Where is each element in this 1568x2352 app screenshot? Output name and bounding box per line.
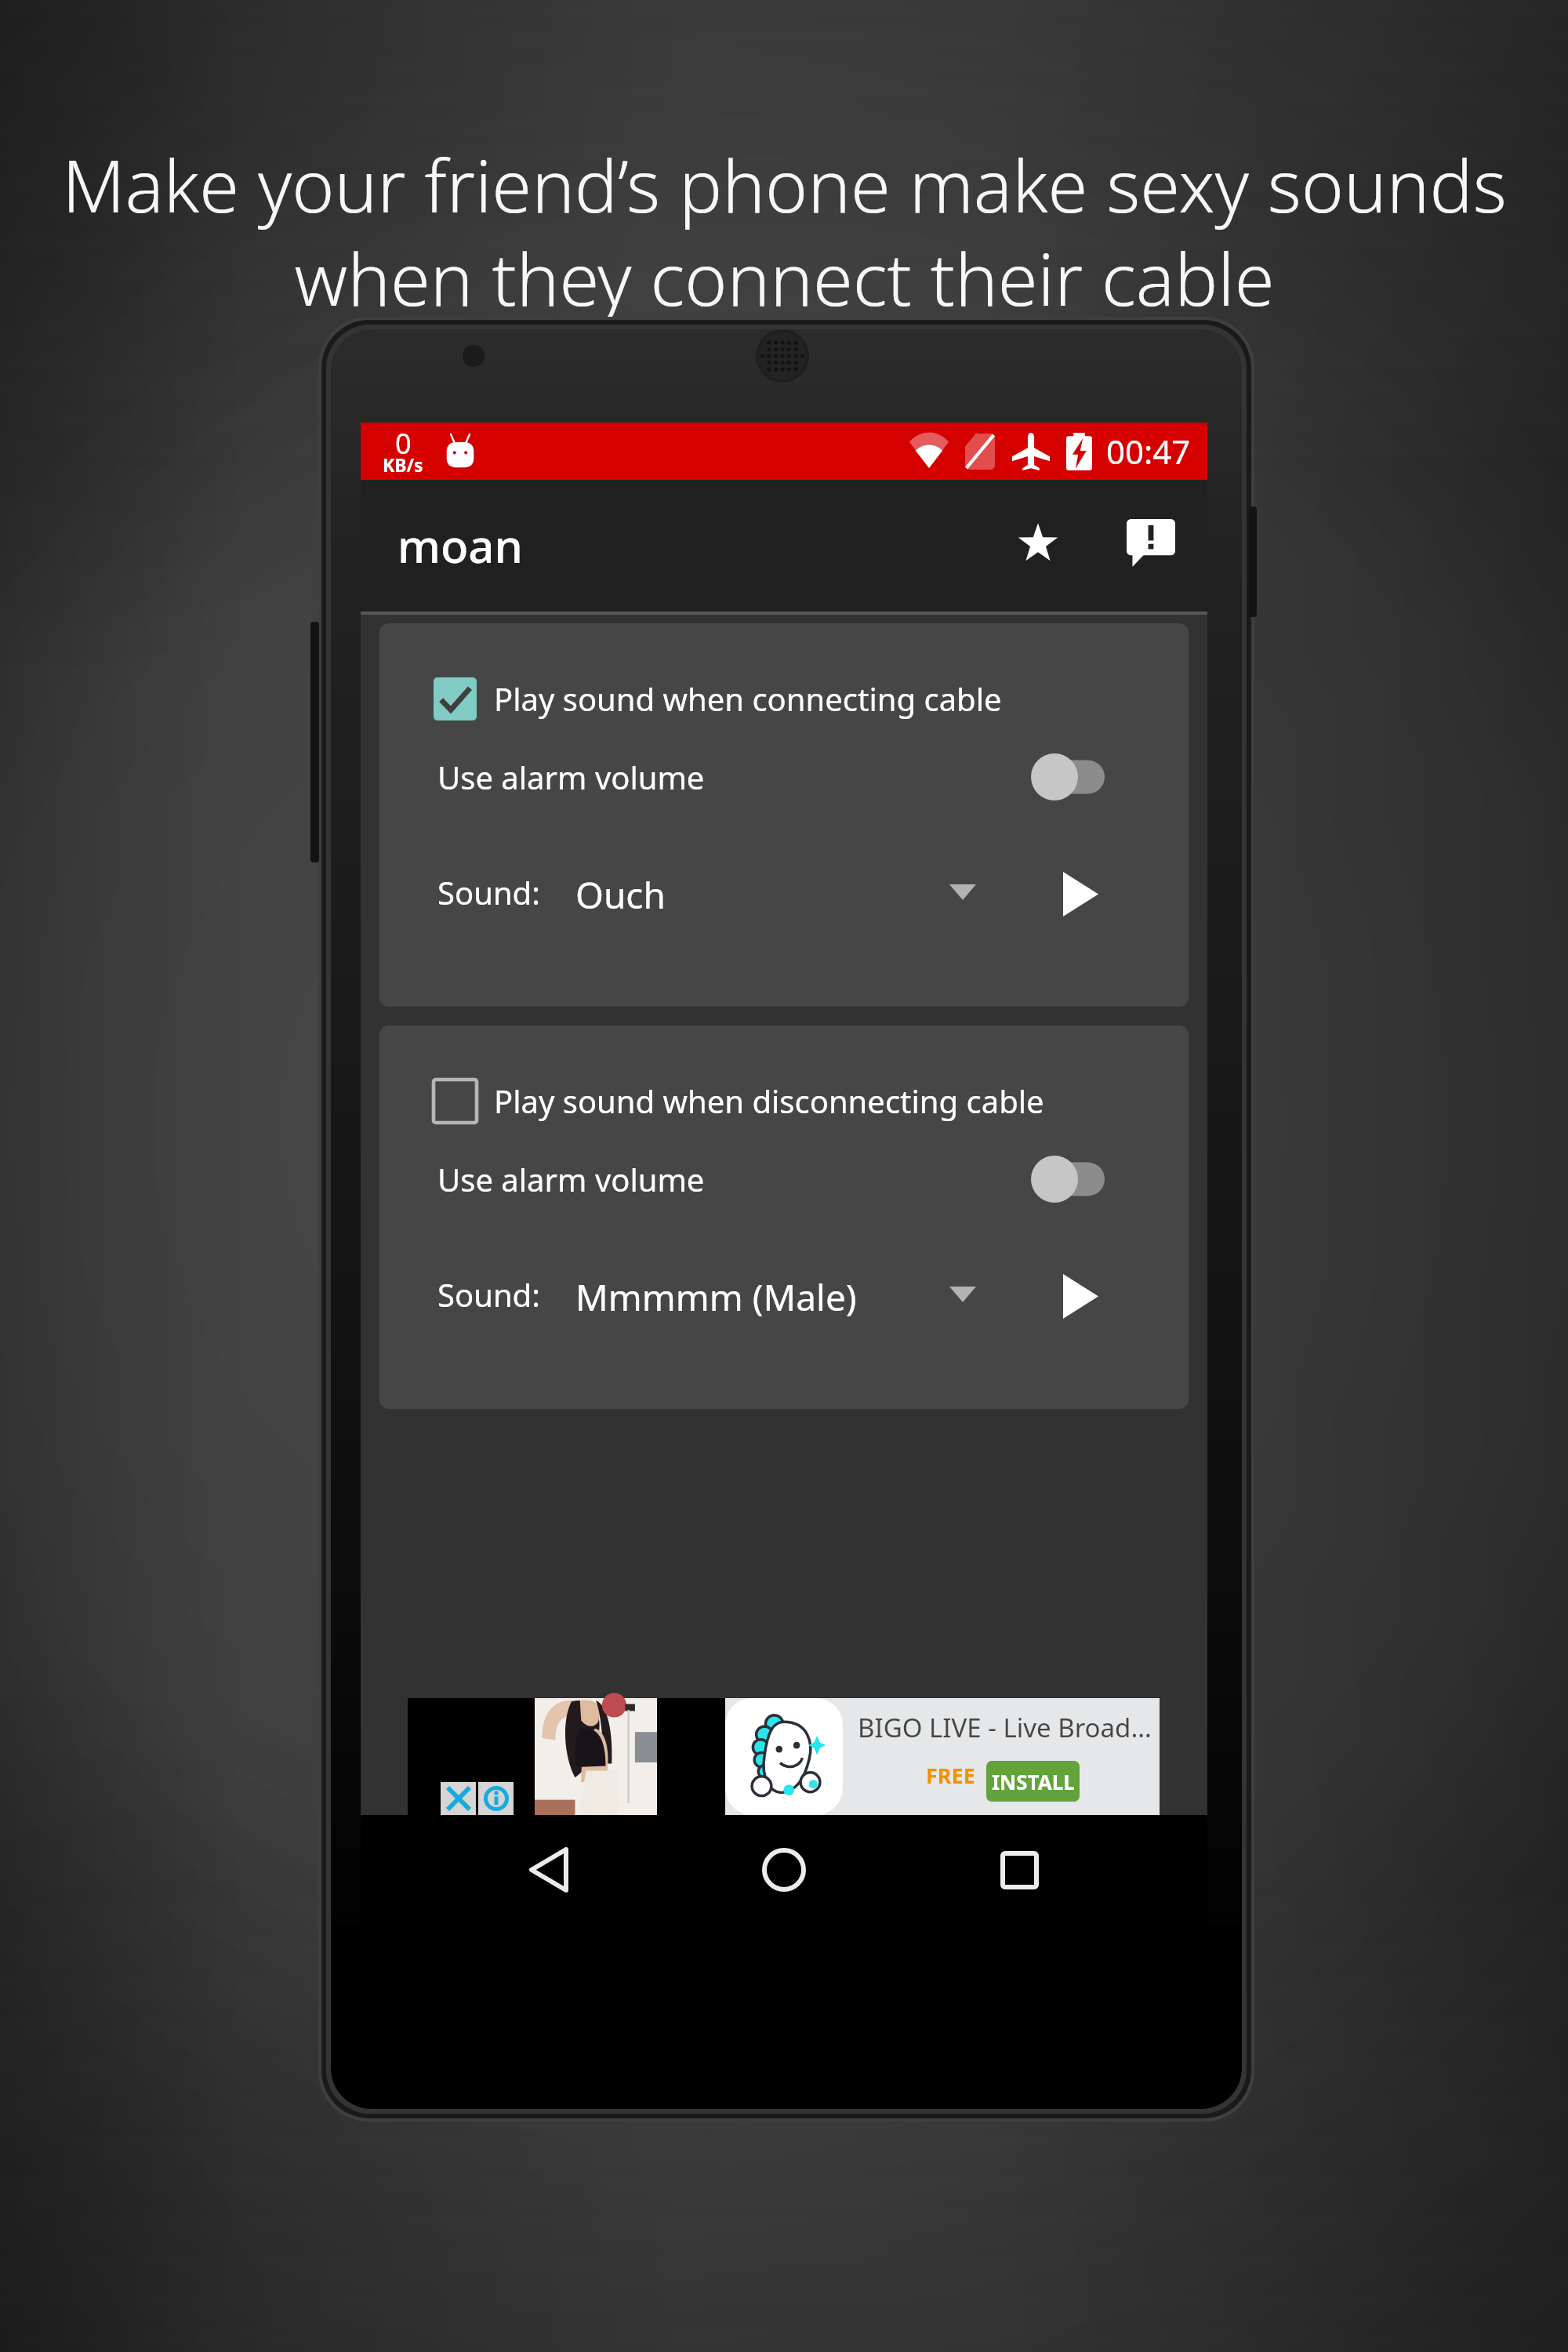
staticText: Use alarm volume bbox=[437, 1158, 705, 1200]
staticText: 00:47 bbox=[1106, 429, 1191, 474]
staticText: Use alarm volume bbox=[437, 756, 705, 798]
staticText: Make your friend’s phone make sexy sound… bbox=[62, 136, 1507, 327]
button[interactable]: Use alarm volume bbox=[379, 1149, 1189, 1210]
staticText: Play sound when disconnecting cable bbox=[494, 1080, 1044, 1122]
staticText: Ouch bbox=[575, 870, 666, 920]
button[interactable]: INSTALL bbox=[986, 1761, 1080, 1802]
button[interactable]: Home bbox=[725, 1815, 843, 1925]
button[interactable]: BIGO LIVE - Live Broad... bbox=[725, 1698, 1160, 1815]
staticText: moan bbox=[397, 514, 523, 576]
button[interactable]: Ad information bbox=[478, 1782, 514, 1815]
button[interactable]: Use alarm volume bbox=[379, 746, 1189, 808]
button[interactable]: Back bbox=[490, 1815, 608, 1925]
button[interactable]: Play sound bbox=[1047, 861, 1113, 927]
staticText: Play sound when connecting cable bbox=[494, 677, 1002, 720]
staticText: BIGO LIVE - Live Broad... bbox=[858, 1710, 1152, 1745]
button[interactable]: Send feedback bbox=[1107, 499, 1195, 586]
button[interactable]: Play sound when connecting cable bbox=[379, 670, 1033, 727]
button[interactable]: Ouch bbox=[568, 861, 983, 927]
staticText: KB/s bbox=[383, 452, 423, 477]
staticText: Sound: bbox=[437, 871, 540, 913]
button[interactable]: Play sound when disconnecting cable bbox=[379, 1073, 1076, 1129]
staticText: INSTALL bbox=[992, 1768, 1075, 1795]
button[interactable]: Close ad bbox=[441, 1782, 476, 1815]
staticText: Sound: bbox=[437, 1273, 540, 1316]
staticText: 0 bbox=[395, 424, 412, 463]
staticText: Mmmmm (Male) bbox=[575, 1272, 857, 1322]
button[interactable]: Mmmmm (Male) bbox=[568, 1263, 983, 1329]
button[interactable]: Favorite bbox=[994, 499, 1082, 586]
button[interactable]: Play sound bbox=[1047, 1263, 1113, 1329]
button[interactable]: Recent apps bbox=[960, 1815, 1078, 1925]
staticText: FREE bbox=[926, 1761, 975, 1790]
